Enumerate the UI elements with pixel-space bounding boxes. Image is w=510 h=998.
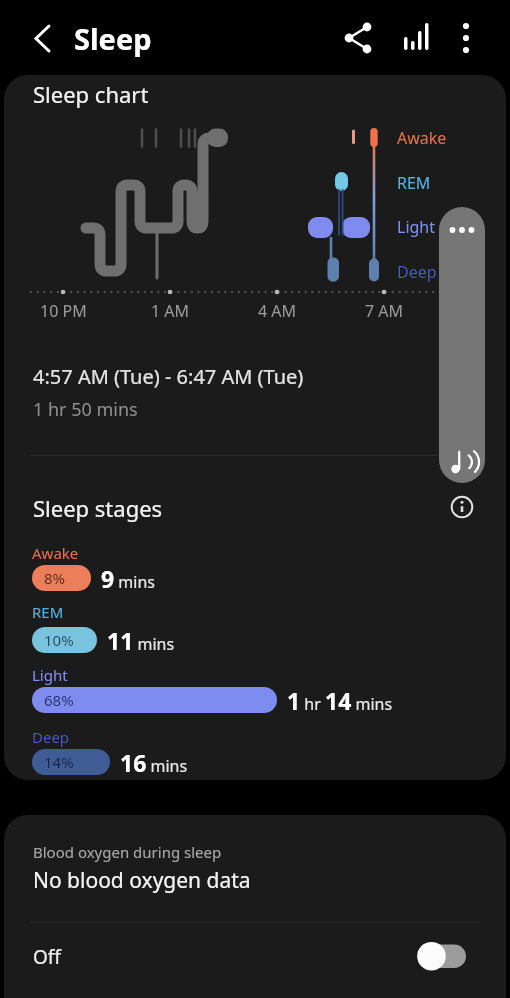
staticText: 68% (44, 690, 74, 710)
staticText: Deep (32, 727, 70, 747)
staticText: 1 hr 50 mins (33, 397, 138, 422)
button[interactable]: 68% (32, 687, 277, 713)
staticText: 8% (44, 568, 66, 588)
staticText: 4 AM (258, 300, 297, 322)
staticText: 16 mins (120, 747, 188, 778)
button[interactable] (439, 207, 485, 483)
staticText: 11 mins (107, 625, 175, 656)
staticText: Blood oxygen during sleep (33, 842, 222, 862)
staticText: Deep (397, 261, 437, 283)
staticText: 9 mins (101, 563, 155, 594)
staticText: REM (397, 172, 431, 194)
staticText: Light (32, 665, 68, 685)
button[interactable]: 14% (32, 749, 110, 775)
staticText: 1 hr 14 mins (287, 685, 393, 716)
staticText: 7 AM (365, 300, 404, 322)
staticText: 14% (44, 752, 74, 772)
staticText: Light (397, 216, 436, 238)
staticText: Sleep chart (33, 79, 149, 109)
staticText: 10% (44, 630, 74, 650)
staticText: Sleep (74, 19, 152, 58)
button[interactable] (4, 815, 506, 998)
button[interactable] (18, 16, 62, 60)
staticText: Sleep stages (33, 493, 163, 523)
button[interactable] (336, 16, 380, 60)
staticText: No blood oxygen data (33, 866, 251, 895)
staticText: REM (32, 602, 64, 622)
staticText: 10 PM (40, 300, 87, 322)
button[interactable] (393, 16, 437, 60)
staticText: Off (33, 944, 61, 970)
staticText: 4:57 AM (Tue) - 6:47 AM (Tue) (33, 363, 304, 390)
button[interactable] (410, 936, 476, 976)
button[interactable]: 8% (32, 565, 91, 591)
button[interactable] (444, 16, 488, 60)
staticText: Awake (397, 127, 447, 149)
staticText: Awake (32, 543, 79, 563)
button[interactable]: 10% (32, 627, 97, 653)
button[interactable] (444, 489, 480, 525)
staticText: 1 AM (151, 300, 190, 322)
